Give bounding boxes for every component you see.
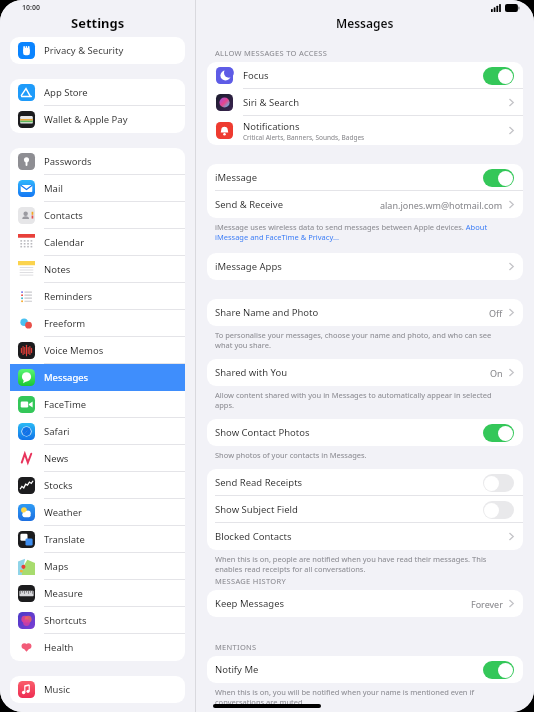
- staticText: Voice Memos: [44, 344, 104, 357]
- staticText: Blocked Contacts: [215, 530, 292, 543]
- button[interactable]: Health: [10, 634, 185, 661]
- staticText: On: [490, 367, 503, 379]
- button[interactable]: Toggle on: [483, 67, 514, 85]
- staticText: Contacts: [44, 209, 83, 222]
- staticText: Freeform: [44, 317, 86, 330]
- button[interactable]: Send Read Receipts: [207, 469, 523, 496]
- staticText: Privacy & Security: [44, 44, 124, 57]
- staticText: iMessage: [215, 171, 258, 184]
- button[interactable]: Messages: [10, 364, 185, 391]
- staticText: Off: [489, 307, 503, 319]
- button[interactable]: Wallet & Apple Pay: [10, 106, 185, 133]
- staticText: ALLOW MESSAGES TO ACCESS: [215, 48, 328, 58]
- button[interactable]: Mail: [10, 175, 185, 202]
- staticText: Settings: [71, 14, 125, 32]
- staticText: 10:00: [22, 3, 40, 13]
- staticText: MENTIONS: [215, 642, 257, 652]
- button[interactable]: iMessage Apps: [207, 253, 523, 280]
- button[interactable]: Show Subject Field: [207, 496, 523, 523]
- other: Open: [509, 98, 514, 107]
- button[interactable]: App Store: [10, 79, 185, 106]
- staticText: Safari: [44, 425, 70, 438]
- other: Open: [509, 532, 514, 541]
- staticText: Show Subject Field: [215, 503, 298, 516]
- button[interactable]: Music: [10, 676, 185, 703]
- staticText: iMessage Apps: [215, 260, 282, 273]
- staticText: Weather: [44, 506, 82, 519]
- button[interactable]: Maps: [10, 553, 185, 580]
- button[interactable]: Stocks: [10, 472, 185, 499]
- button[interactable]: Translate: [10, 526, 185, 553]
- button[interactable]: Send & Receive: [207, 191, 523, 218]
- button[interactable]: Toggle off: [483, 501, 514, 519]
- button[interactable]: Blocked Contacts: [207, 523, 523, 550]
- button[interactable]: News: [10, 445, 185, 472]
- staticText: Keep Messages: [215, 597, 285, 610]
- staticText: FaceTime: [44, 398, 87, 411]
- button[interactable]: Toggle on: [483, 661, 514, 679]
- staticText: Notes: [44, 263, 71, 276]
- staticText: Calendar: [44, 236, 85, 249]
- button[interactable]: Weather: [10, 499, 185, 526]
- staticText: Show Contact Photos: [215, 426, 310, 439]
- button[interactable]: Notes: [10, 256, 185, 283]
- staticText: When this is on, people are notified whe…: [215, 554, 510, 574]
- button[interactable]: Reminders: [10, 283, 185, 310]
- button[interactable]: Measure: [10, 580, 185, 607]
- button[interactable]: Toggle on: [483, 169, 514, 187]
- staticText: When this is on, you will be notified wh…: [215, 687, 510, 707]
- staticText: Music: [44, 683, 71, 696]
- staticText: Notifications: [243, 120, 300, 133]
- button[interactable]: Toggle on: [483, 424, 514, 442]
- staticText: Health: [44, 641, 74, 654]
- staticText: Messages: [336, 15, 394, 31]
- staticText: MESSAGE HISTORY: [215, 576, 286, 586]
- button[interactable]: Focus: [207, 62, 523, 89]
- staticText: alan.jones.wm@hotmail.com: [380, 199, 503, 211]
- staticText: News: [44, 452, 69, 465]
- button[interactable]: Safari: [10, 418, 185, 445]
- staticText: Allow content shared with you in Message…: [215, 390, 510, 410]
- staticText: Forever: [471, 598, 503, 610]
- button[interactable]: Privacy & Security: [10, 37, 185, 64]
- button[interactable]: Freeform: [10, 310, 185, 337]
- other: Open: [509, 368, 514, 377]
- other: Open: [509, 262, 514, 271]
- other: Open: [509, 308, 514, 317]
- staticText: Stocks: [44, 479, 73, 492]
- staticText: Shared with You: [215, 366, 288, 379]
- button[interactable]: Voice Memos: [10, 337, 185, 364]
- other: Open: [509, 126, 514, 135]
- staticText: To personalise your messages, choose you…: [215, 330, 510, 350]
- button[interactable]: Calendar: [10, 229, 185, 256]
- staticText: Send Read Receipts: [215, 476, 303, 489]
- other: Open: [509, 599, 514, 608]
- button[interactable]: Share Name and Photo: [207, 299, 523, 326]
- button[interactable]: Siri & Search: [207, 89, 523, 116]
- staticText: Send & Receive: [215, 198, 284, 211]
- staticText: Share Name and Photo: [215, 306, 319, 319]
- staticText: Notify Me: [215, 663, 259, 676]
- button[interactable]: Shortcuts: [10, 607, 185, 634]
- button[interactable]: Notify Me: [207, 656, 523, 683]
- staticText: Critical Alerts, Banners, Sounds, Badges: [243, 133, 365, 142]
- button[interactable]: iMessage: [207, 164, 523, 191]
- staticText: Maps: [44, 560, 69, 573]
- button[interactable]: Keep Messages: [207, 590, 523, 617]
- staticText: Reminders: [44, 290, 93, 303]
- staticText: Mail: [44, 182, 63, 195]
- button[interactable]: Passwords: [10, 148, 185, 175]
- staticText: Focus: [243, 69, 269, 82]
- button[interactable]: Contacts: [10, 202, 185, 229]
- button[interactable]: Show Contact Photos: [207, 419, 523, 446]
- button[interactable]: Shared with You: [207, 359, 523, 386]
- staticText: App Store: [44, 86, 88, 99]
- button[interactable]: Notifications: [207, 116, 523, 145]
- button[interactable]: FaceTime: [10, 391, 185, 418]
- staticText: Messages: [44, 371, 89, 384]
- staticText: iMessage uses wireless data to send mess…: [215, 222, 510, 242]
- staticText: Measure: [44, 587, 83, 600]
- staticText: Passwords: [44, 155, 92, 168]
- button[interactable]: Toggle off: [483, 474, 514, 492]
- staticText: Show photos of your contacts in Messages…: [215, 450, 367, 460]
